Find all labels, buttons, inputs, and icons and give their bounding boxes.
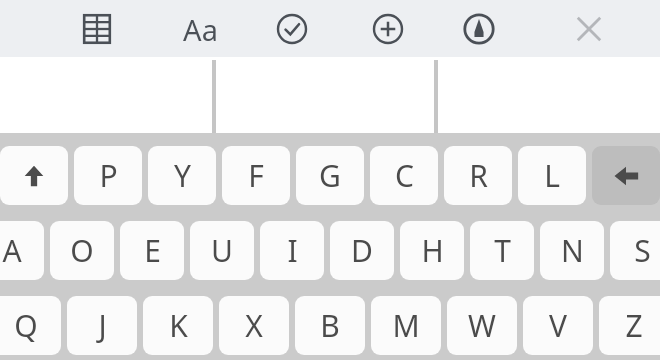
button[interactable]: O [50,221,114,280]
button[interactable]: Q [0,296,61,355]
staticText: N [561,230,584,271]
button[interactable]: D [330,221,394,280]
staticText: Y [174,155,191,196]
staticText: X [245,305,263,346]
button[interactable]: M [371,296,441,355]
staticText: H [421,230,444,271]
staticText: O [70,230,94,271]
button[interactable]: X [219,296,289,355]
staticText: I [287,230,298,271]
staticText: U [211,230,233,271]
button[interactable]: Backspace [592,146,660,205]
button[interactable]: H [400,221,464,280]
button[interactable]: T [470,221,534,280]
staticText: K [169,305,188,346]
button[interactable]: L [518,146,586,205]
button[interactable]: U [190,221,254,280]
button[interactable]: N [540,221,604,280]
staticText: P [99,155,118,196]
button[interactable]: W [447,296,517,355]
button[interactable]: B [295,296,365,355]
staticText: J [98,305,107,346]
staticText: R [469,155,488,196]
button[interactable]: G [296,146,364,205]
button[interactable]: Shift [0,146,68,205]
button[interactable]: Y [148,146,216,205]
button[interactable]: R [444,146,512,205]
button[interactable]: Checklist [266,3,318,55]
button[interactable]: S [610,221,660,280]
staticText: Q [14,305,38,346]
button[interactable]: J [67,296,137,355]
staticText: E [144,230,161,271]
staticText: A [2,230,22,271]
button[interactable]: Draw [453,3,505,55]
staticText: T [494,230,511,271]
staticText: Aa [183,10,218,49]
staticText: D [351,230,373,271]
staticText: Z [625,305,643,346]
button[interactable]: K [143,296,213,355]
button[interactable]: Close keyboard [563,3,615,55]
button[interactable]: Text format [174,3,226,55]
button[interactable]: Insert [362,3,414,55]
staticText: W [468,305,496,346]
button[interactable]: Z [599,296,660,355]
staticText: L [544,155,560,196]
staticText: F [248,155,264,196]
button[interactable]: E [120,221,184,280]
button[interactable]: V [523,296,593,355]
staticText: V [549,305,567,346]
button[interactable]: I [260,221,324,280]
staticText: S [634,230,651,271]
staticText: M [392,305,420,346]
button[interactable]: Insert table [71,3,123,55]
staticText: C [395,155,414,196]
button[interactable]: C [370,146,438,205]
button[interactable]: A [0,221,44,280]
button[interactable]: P [74,146,142,205]
staticText: G [319,155,341,196]
staticText: B [320,305,340,346]
button[interactable]: F [222,146,290,205]
